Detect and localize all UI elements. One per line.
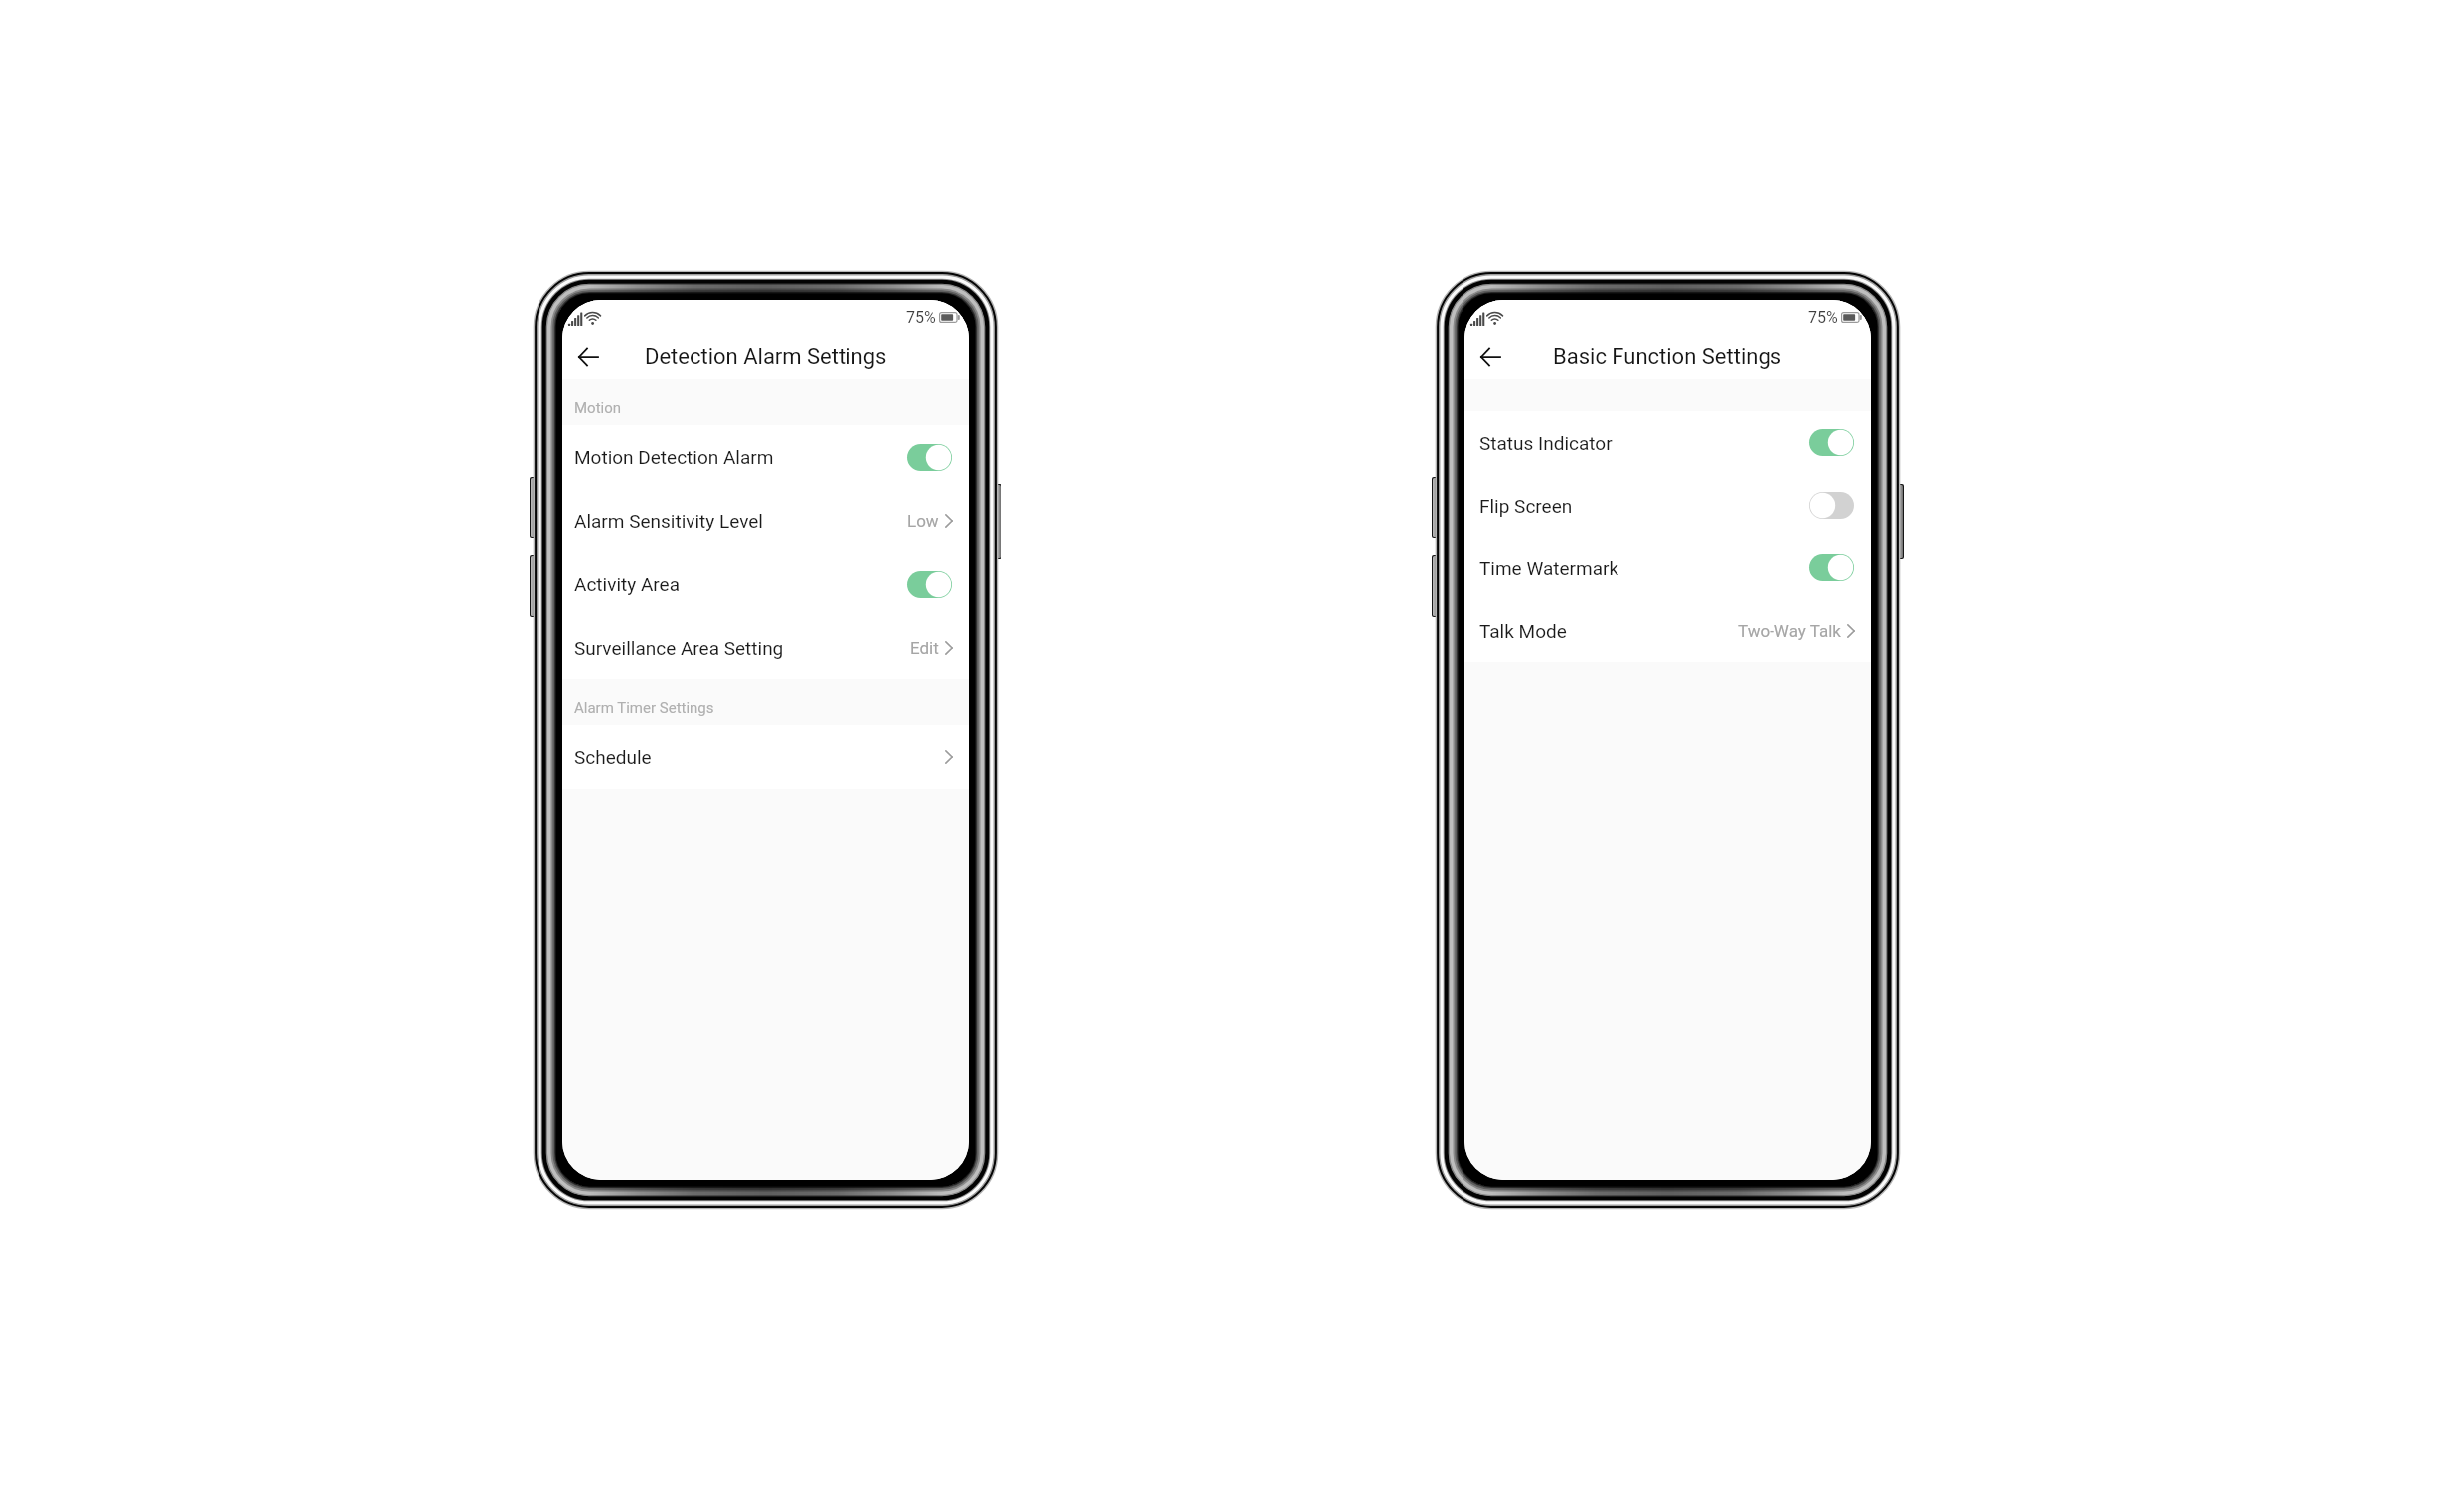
staticText: 75% [906,308,936,327]
button[interactable]: Status Indicator, on [1809,429,1854,456]
button[interactable]: Talk Mode [1464,599,1871,662]
button[interactable]: Flip Screen [1464,474,1871,536]
button[interactable]: Activity Area, on [907,571,952,598]
staticText: Surveillance Area Setting [574,637,784,659]
staticText: Edit [910,638,939,658]
staticText: Motion Detection Alarm [574,446,774,468]
staticText: Alarm Sensitivity Level [574,510,763,531]
staticText: 75% [1808,308,1838,327]
staticText: Motion [574,399,622,417]
button[interactable]: Back [568,337,608,377]
button[interactable]: Alarm Sensitivity Level [562,489,969,552]
button[interactable]: Time Watermark, on [1809,554,1854,581]
button[interactable]: Back [1470,337,1510,377]
button[interactable]: Motion Detection Alarm, on [907,444,952,471]
staticText: Talk Mode [1479,620,1567,642]
staticText: Low [907,511,939,530]
button[interactable]: Activity Area [562,552,969,616]
staticText: Basic Function Settings [1553,344,1782,370]
button[interactable]: Motion Detection Alarm [562,425,969,489]
staticText: Two-Way Talk [1738,621,1841,641]
button[interactable]: Schedule [562,725,969,789]
staticText: Flip Screen [1479,495,1573,517]
button[interactable]: Time Watermark [1464,536,1871,599]
staticText: Activity Area [574,573,680,595]
staticText: Time Watermark [1479,557,1619,579]
button[interactable]: Status Indicator [1464,411,1871,474]
button[interactable]: Surveillance Area Setting [562,616,969,679]
staticText: Schedule [574,746,652,768]
button[interactable]: Flip Screen, off [1809,492,1854,519]
staticText: Status Indicator [1479,432,1613,454]
staticText: Alarm Timer Settings [574,699,714,717]
staticText: Detection Alarm Settings [645,344,887,370]
